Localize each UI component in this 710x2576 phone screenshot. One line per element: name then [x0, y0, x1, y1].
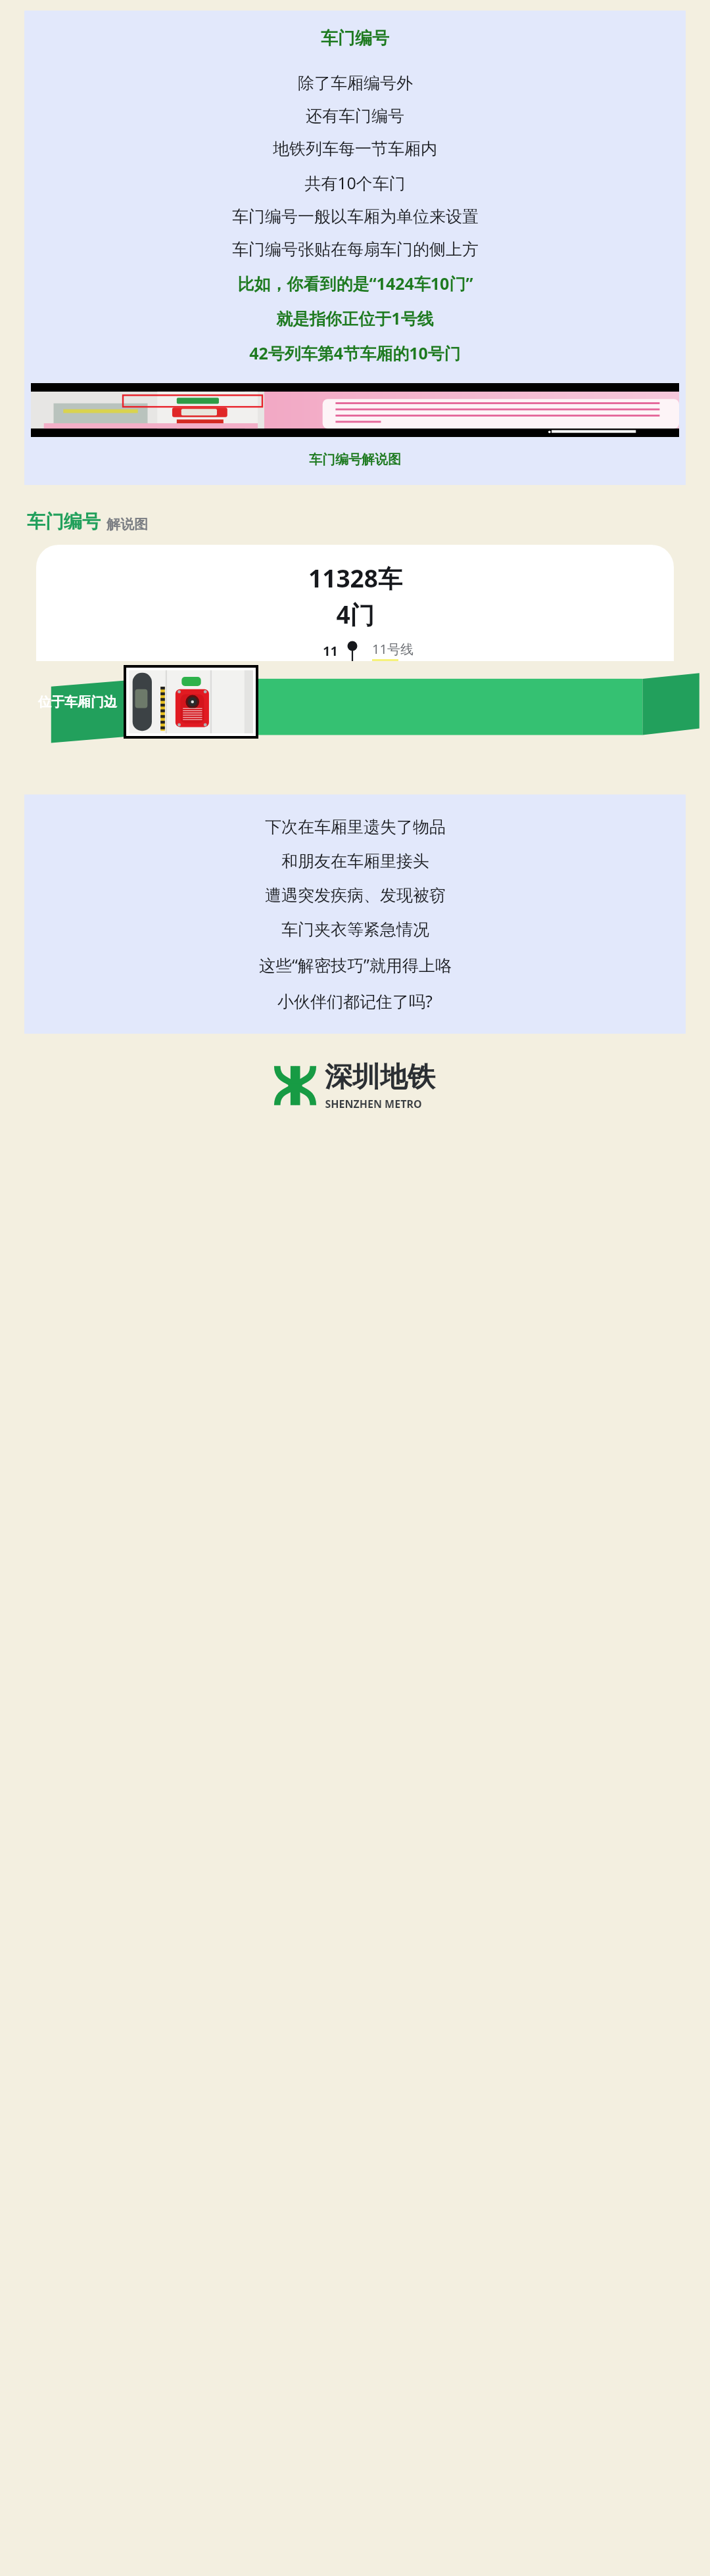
staticText: 车门编号: [27, 510, 101, 533]
staticText: 解说图: [106, 516, 148, 533]
staticText: 下次在车厢里遗失了物品: [265, 817, 446, 837]
staticText: 车门编号张贴在每扇车门的侧上方: [232, 239, 479, 260]
button[interactable]: 车门编号照片: [31, 383, 679, 437]
staticText: 车门编号解说图: [309, 451, 401, 468]
staticText: 地铁列车每一节车厢内: [273, 139, 437, 159]
button[interactable]: 车门编号位置照片: [129, 670, 253, 733]
staticText: 42号列车第4节车厢的10号门: [249, 342, 461, 364]
staticText: 车门夹衣等紧急情况: [281, 919, 429, 940]
staticText: 车门编号一般以车厢为单位来设置: [232, 206, 479, 227]
staticText: 和朋友在车厢里接头: [281, 851, 429, 871]
staticText: 位于车厢门边: [38, 694, 117, 710]
staticText: 就是指你正位于1号线: [276, 307, 434, 329]
staticText: 比如，你看到的是“1424车10门”: [237, 272, 473, 294]
staticText: 深圳地铁: [325, 1060, 435, 1095]
staticText: 车门编号: [321, 28, 389, 49]
staticText: 共有10个车门: [304, 172, 406, 194]
staticText: 11328车: [308, 561, 402, 595]
staticText: 11: [323, 642, 338, 660]
staticText: 小伙伴们都记住了吗?: [277, 990, 433, 1012]
staticText: 除了车厢编号外: [298, 73, 413, 93]
staticText: 遭遇突发疾病、发现被窃: [265, 885, 446, 906]
staticText: 这些“解密技巧”就用得上咯: [259, 954, 452, 976]
staticText: 4门: [336, 597, 375, 631]
button[interactable]: 位于车厢门边: [38, 694, 117, 710]
staticText: SHENZHEN METRO: [325, 1097, 422, 1111]
staticText: 还有车门编号: [306, 106, 404, 126]
button[interactable]: 深圳地铁 SHENZHEN METRO: [0, 1060, 710, 1111]
staticText: 11号线: [372, 640, 414, 658]
